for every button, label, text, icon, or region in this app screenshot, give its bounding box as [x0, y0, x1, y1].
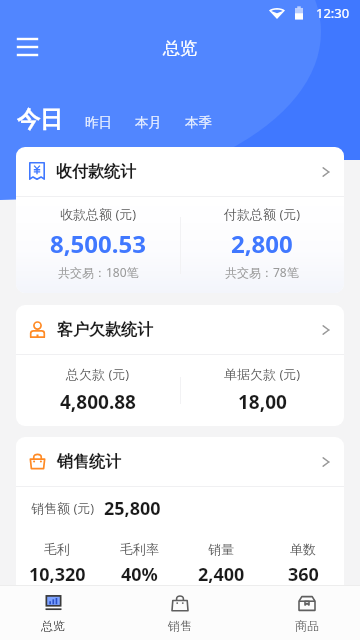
staticText: 8,500.53 — [50, 227, 146, 260]
staticText: 10,320 — [29, 562, 86, 587]
button[interactable]: 本月 — [135, 114, 162, 131]
staticText: 4,800.88 — [60, 389, 136, 415]
staticText: 总览 — [41, 618, 65, 633]
button[interactable]: 销售统计 — [16, 437, 344, 486]
staticText: 毛利率 — [120, 541, 159, 557]
staticText: 毛利 — [44, 541, 70, 557]
button[interactable]: 昨日 — [85, 114, 112, 131]
button[interactable]: 今日 — [17, 105, 63, 134]
button[interactable]: 商品 — [278, 586, 336, 640]
staticText: 单数 — [290, 541, 316, 557]
staticText: 总览 — [163, 38, 197, 59]
staticText: 2,800 — [231, 227, 293, 260]
staticText: 收款总额 (元) — [60, 205, 137, 223]
staticText: 商品 — [295, 618, 319, 633]
staticText: 共交易：78笔 — [225, 264, 299, 280]
button[interactable]: 本季 — [185, 114, 212, 131]
button[interactable]: 收付款统计 — [16, 147, 344, 196]
staticText: 付款总额 (元) — [224, 205, 301, 223]
staticText: 客户欠款统计 — [57, 320, 153, 340]
staticText: 销售统计 — [57, 452, 121, 472]
button[interactable]: Menu — [8, 28, 46, 66]
staticText: 收付款统计 — [56, 162, 136, 182]
staticText: 25,800 — [104, 496, 161, 521]
staticText: 12:30 — [316, 4, 350, 22]
button[interactable]: 总览 — [24, 586, 82, 640]
staticText: 单据欠款 (元) — [224, 365, 301, 383]
staticText: 销量 — [208, 541, 234, 557]
button[interactable]: 客户欠款统计 — [16, 305, 344, 354]
staticText: 2,400 — [198, 562, 245, 587]
staticText: 18,00 — [238, 389, 287, 415]
staticText: 360 — [288, 562, 319, 587]
staticText: 销售额 (元) — [31, 499, 95, 517]
staticText: 40% — [121, 562, 158, 587]
button[interactable]: 销售 — [151, 586, 209, 640]
staticText: 总欠款 (元) — [66, 365, 130, 383]
staticText: 销售 — [168, 618, 192, 633]
staticText: 共交易：180笔 — [58, 264, 139, 280]
